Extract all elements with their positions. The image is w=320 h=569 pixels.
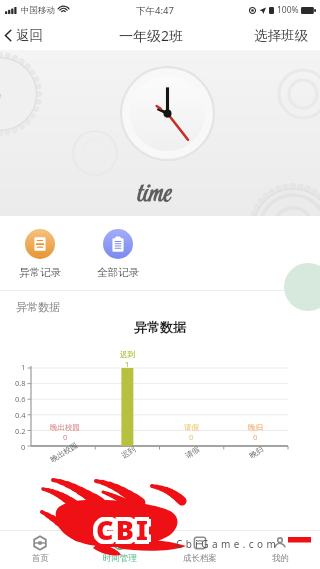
staticText: 1	[21, 362, 26, 372]
staticText: 时间管理	[103, 553, 137, 564]
staticText: CBI	[98, 511, 153, 548]
staticText: 0	[21, 442, 26, 452]
staticText: CBI	[94, 513, 149, 550]
staticText: 100%	[277, 4, 299, 16]
button[interactable]: 时间管理	[80, 530, 160, 569]
staticText: CBI	[98, 515, 153, 552]
staticText: 异常记录	[19, 266, 61, 279]
staticText: CBI	[92, 509, 147, 546]
staticText: time	[136, 174, 169, 215]
button[interactable]: 成长档案	[160, 530, 240, 569]
staticText: 异常数据	[16, 300, 60, 314]
staticText: CBI	[100, 509, 155, 546]
staticText: 我的	[272, 553, 289, 564]
button[interactable]: 我的	[240, 530, 320, 569]
staticText: 0	[63, 432, 68, 442]
staticText: 返回	[16, 27, 43, 44]
staticText: CBI	[94, 515, 149, 552]
staticText: 晚归	[248, 445, 265, 460]
staticText: CBI	[98, 507, 153, 544]
staticText: 下午4:47	[136, 4, 174, 17]
staticText: CBI	[94, 507, 149, 544]
staticText: 1	[125, 359, 130, 369]
staticText: 成长档案	[183, 553, 217, 564]
staticText: 全部记录	[97, 266, 139, 279]
staticText: 迟到	[120, 350, 135, 359]
staticText: 0	[189, 432, 194, 442]
staticText: 晚出校园	[50, 423, 80, 432]
staticText: CbiGame.com	[176, 537, 280, 551]
staticText: CBI	[92, 511, 147, 548]
staticText: 晚归	[248, 423, 263, 432]
staticText: 首页	[32, 553, 49, 564]
staticText: CBI	[94, 509, 149, 546]
staticText: CBI	[98, 513, 153, 550]
staticText: 0.2	[15, 426, 26, 436]
staticText: 请假	[184, 445, 201, 460]
staticText: 中国移动	[21, 5, 55, 16]
button[interactable]: 全部记录	[97, 229, 139, 279]
staticText: CBI	[96, 513, 151, 550]
staticText: CBI	[100, 513, 155, 550]
staticText: CBI	[96, 507, 151, 544]
staticText: CBI	[100, 511, 155, 548]
button[interactable]: 选择班级	[244, 20, 320, 50]
staticText: CBI	[92, 513, 147, 550]
staticText: 0.4	[15, 410, 26, 420]
button[interactable]: 返回	[0, 20, 51, 50]
staticText: CBI	[98, 509, 153, 546]
button[interactable]: 首页	[0, 530, 80, 569]
staticText: CBI	[96, 511, 151, 548]
staticText: 异常数据	[0, 319, 320, 335]
staticText: 0.6	[15, 394, 26, 404]
staticText: CBI	[94, 511, 149, 548]
staticText: 选择班级	[254, 27, 308, 44]
staticText: CBI	[96, 509, 151, 546]
staticText: CBI	[96, 515, 151, 552]
staticText: 请假	[184, 423, 199, 432]
button[interactable]: 异常记录	[19, 229, 61, 279]
staticText: 晚出校园	[49, 441, 79, 464]
staticText: 0	[253, 432, 258, 442]
staticText: 一年级2班	[119, 26, 184, 45]
staticText: 0.8	[15, 378, 26, 388]
staticText: 迟到	[120, 445, 137, 460]
